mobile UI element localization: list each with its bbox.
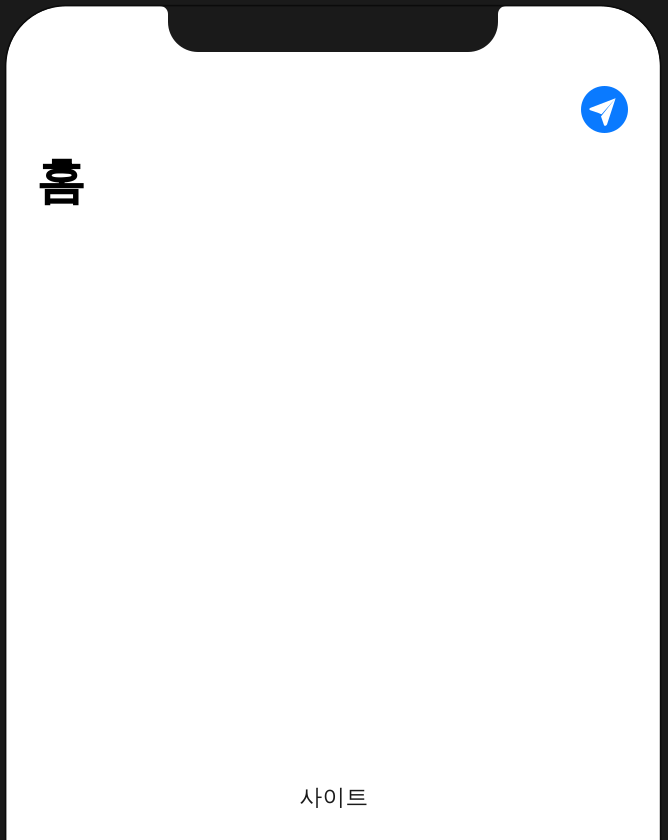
button[interactable]: 사이트 [283, 777, 384, 817]
staticText: 사이트 [299, 783, 368, 811]
button[interactable]: Send [581, 86, 628, 133]
staticText: 홈 [36, 151, 85, 212]
